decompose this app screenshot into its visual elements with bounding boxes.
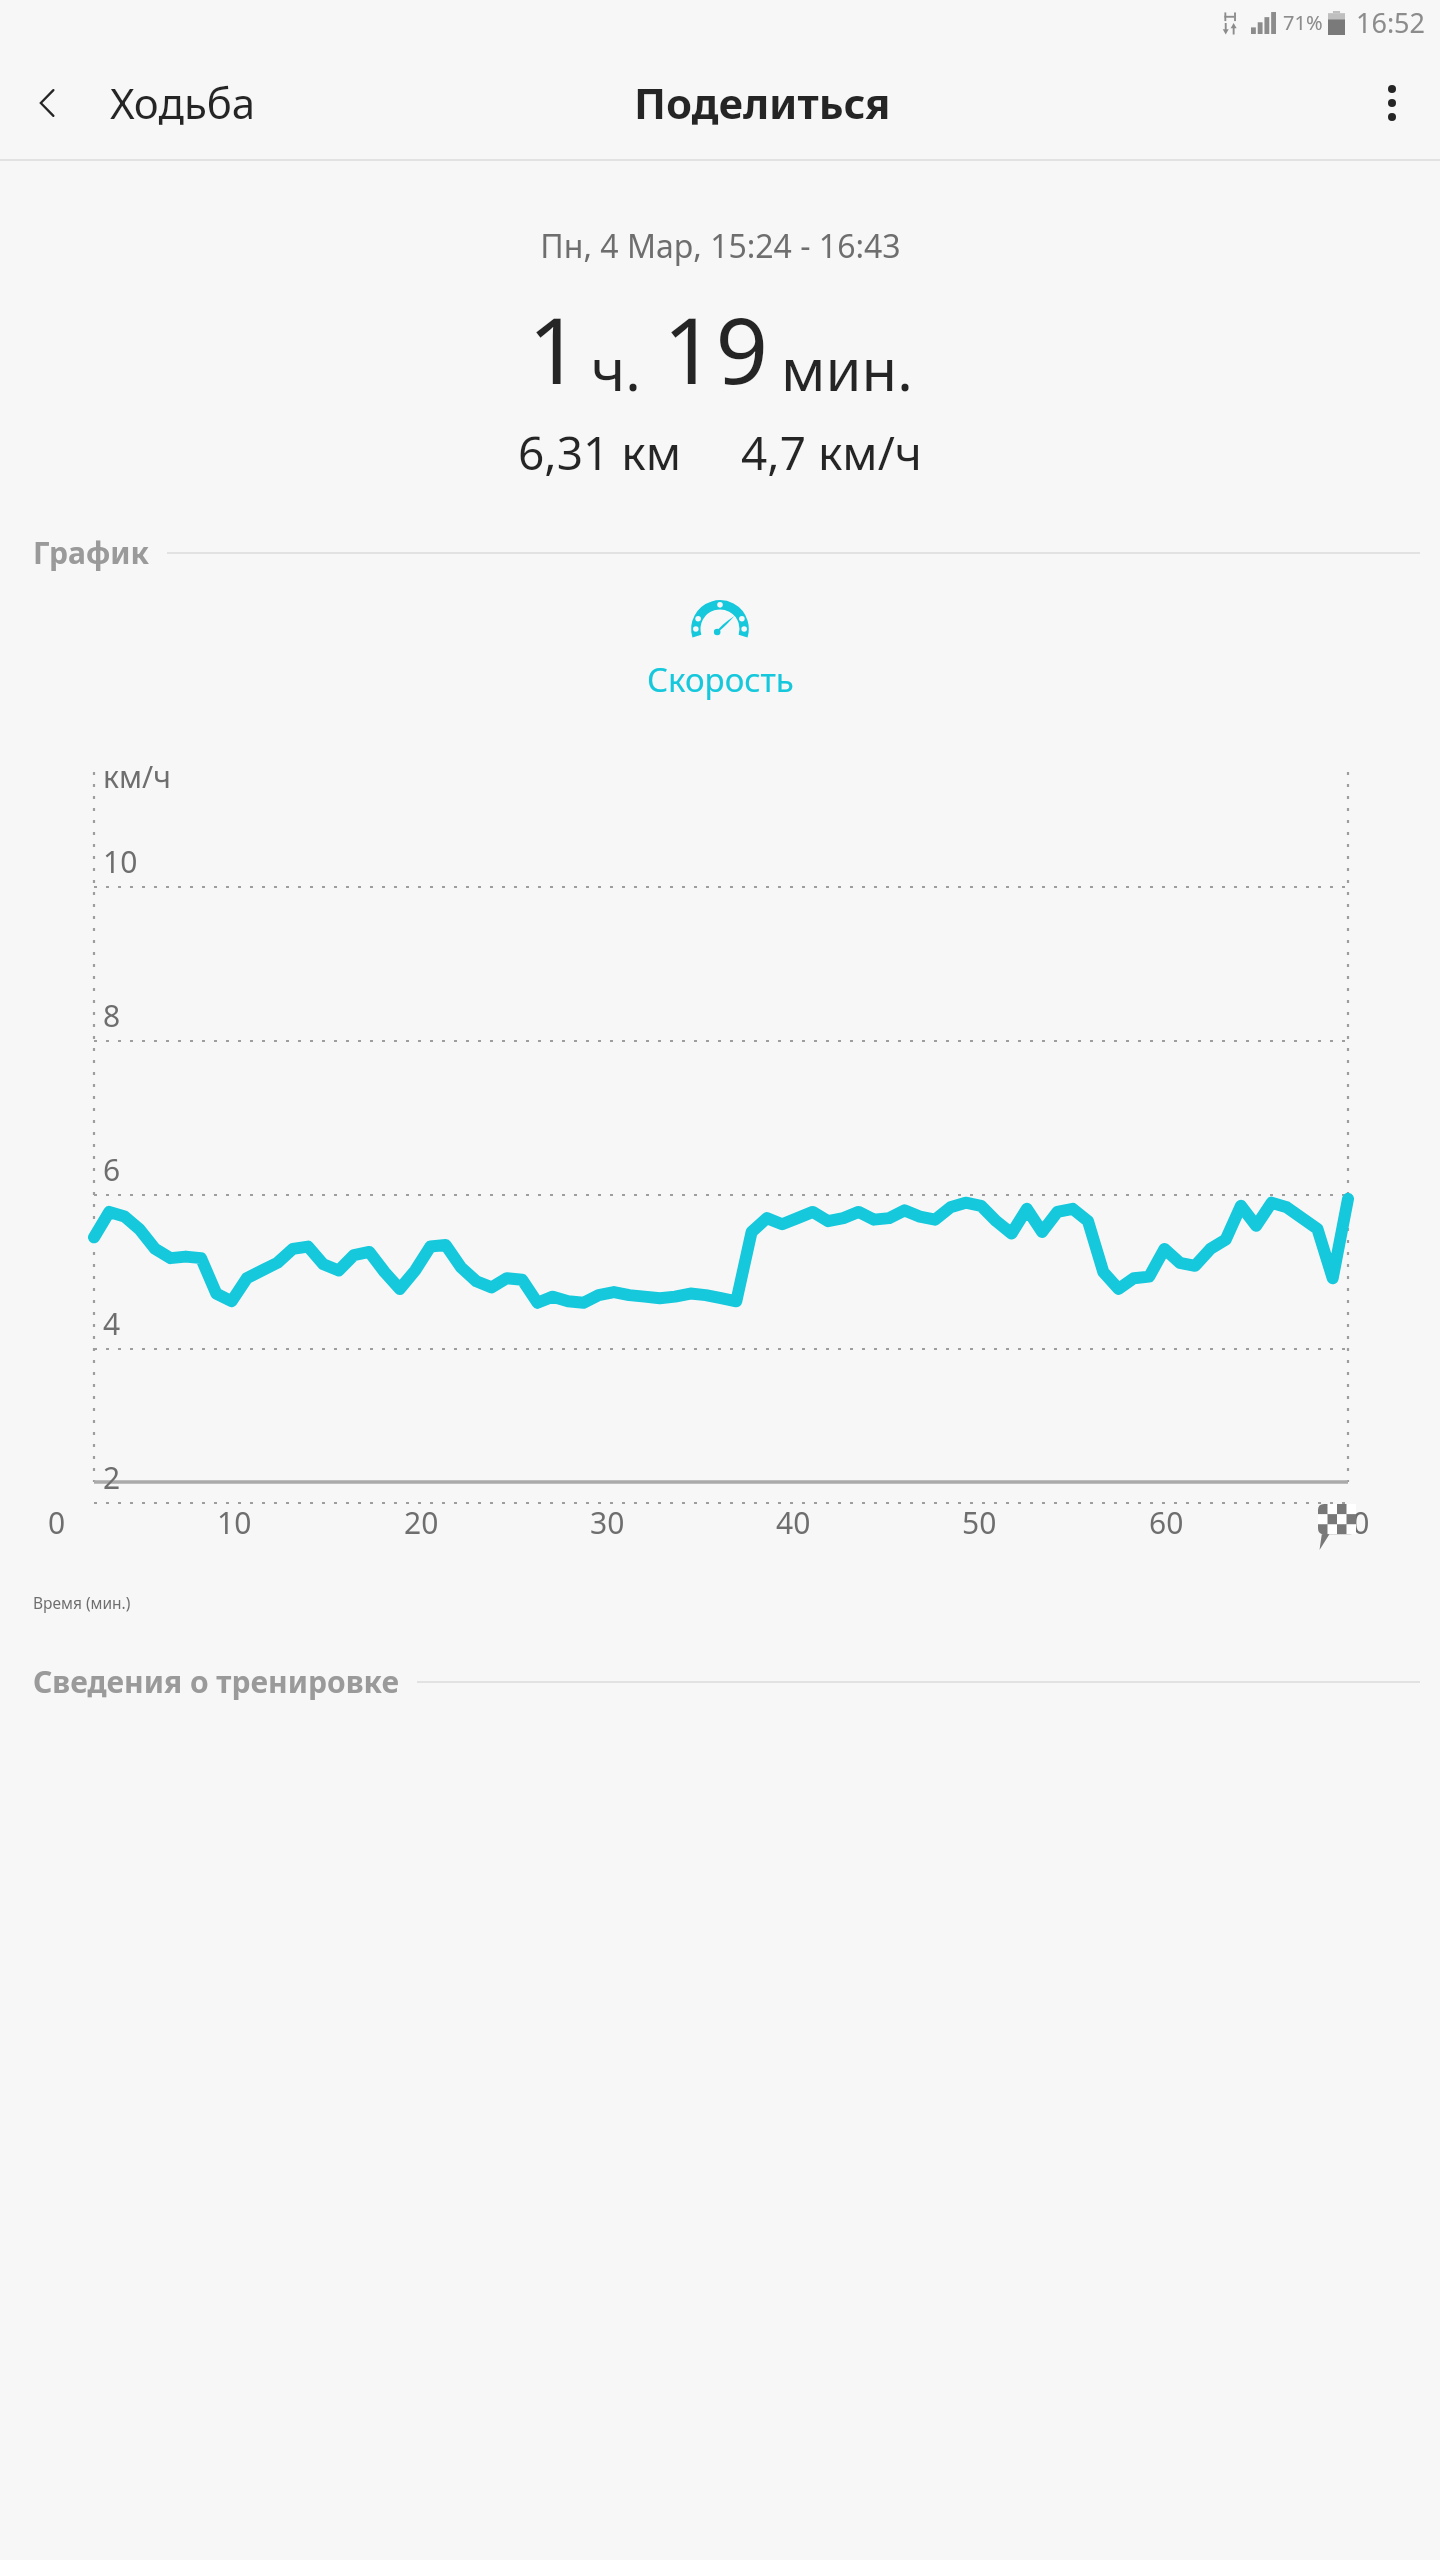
staticText: км/ч xyxy=(103,756,171,797)
staticText: Скорость xyxy=(647,657,794,702)
staticText: 10 xyxy=(103,841,138,882)
staticText: Пн, 4 Мар, 15:24 - 16:43 xyxy=(540,224,901,268)
staticText: 40 xyxy=(776,1502,811,1543)
staticText: 20 xyxy=(404,1502,439,1543)
staticText: 70 xyxy=(1335,1502,1370,1543)
staticText: 1 xyxy=(528,286,581,411)
staticText: 50 xyxy=(962,1502,997,1543)
staticText: 60 xyxy=(1149,1502,1184,1543)
staticText: График xyxy=(33,532,149,573)
staticText: 10 xyxy=(217,1502,252,1543)
staticText: 16:52 xyxy=(1356,4,1426,41)
staticText: Сведения о тренировке xyxy=(33,1661,399,1702)
button[interactable]: Ещё xyxy=(1344,55,1440,151)
button[interactable]: Поделиться xyxy=(634,74,891,131)
staticText: 19 xyxy=(663,286,769,411)
staticText: Поделиться xyxy=(634,74,891,131)
staticText: 71% xyxy=(1283,9,1323,36)
staticText: мин. xyxy=(781,329,913,408)
staticText: 4,7 км/ч xyxy=(741,421,922,484)
staticText: 6,31 км xyxy=(518,421,681,484)
button[interactable]: Скорость xyxy=(0,601,1440,702)
staticText: Ходьба xyxy=(110,74,256,131)
button[interactable]: Назад xyxy=(0,55,96,151)
staticText: 2 xyxy=(103,1457,121,1498)
staticText: 30 xyxy=(590,1502,625,1543)
staticText: 8 xyxy=(103,995,121,1036)
staticText: 0 xyxy=(48,1502,66,1543)
staticText: Время (мин.) xyxy=(33,1592,131,1613)
staticText: 6 xyxy=(103,1149,121,1190)
button[interactable]: Ходьба xyxy=(110,74,256,131)
other: Скорость xyxy=(690,601,750,651)
staticText: 4 xyxy=(103,1303,121,1344)
staticText: ч. xyxy=(591,329,641,408)
